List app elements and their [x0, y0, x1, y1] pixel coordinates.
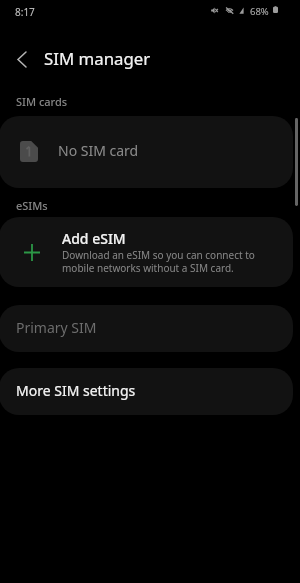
- staticText: More SIM settings: [16, 381, 136, 400]
- staticText: SIM cards: [16, 94, 68, 109]
- button[interactable]: More SIM settings: [0, 368, 293, 415]
- staticText: eSIMs: [16, 198, 48, 213]
- staticText: mobile networks without a SIM card.: [62, 261, 234, 275]
- button[interactable]: Primary SIM: [0, 305, 293, 352]
- staticText: No SIM card: [58, 141, 139, 160]
- staticText: SIM manager: [44, 47, 151, 70]
- staticText: 68%: [250, 5, 269, 18]
- button[interactable]: Navigate up: [6, 44, 38, 74]
- staticText: Add eSIM: [62, 229, 126, 248]
- button[interactable]: No SIM card: [0, 116, 293, 188]
- staticText: 8:17: [15, 5, 35, 19]
- button[interactable]: Add eSIM: [0, 217, 293, 287]
- staticText: Download an eSIM so you can connect to: [62, 248, 255, 262]
- staticText: Primary SIM: [16, 318, 97, 337]
